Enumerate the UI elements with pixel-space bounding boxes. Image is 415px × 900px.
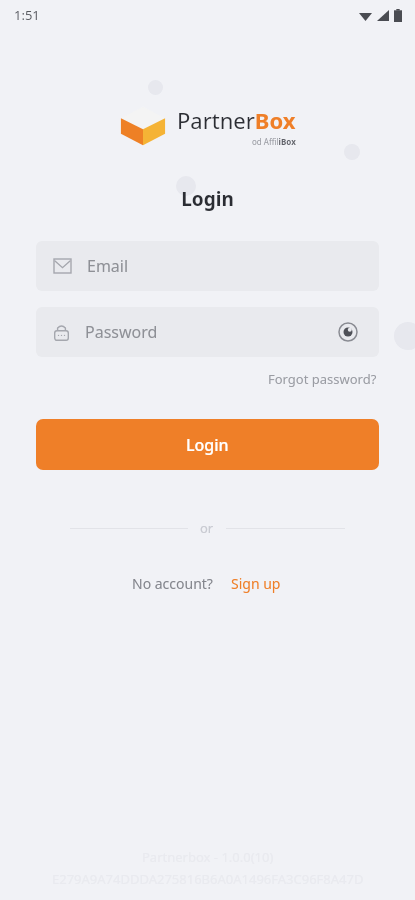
staticText: od AffiliBox (252, 136, 296, 147)
staticText: 1:51 (14, 6, 40, 24)
staticText: Forgot password? (268, 370, 377, 388)
button[interactable]: Sign up (229, 572, 283, 595)
staticText: Login (0, 186, 415, 212)
staticText: PartnerBox (177, 105, 296, 135)
button[interactable]: Show password (335, 319, 361, 345)
button[interactable]: Login (36, 419, 379, 470)
button[interactable]: Password (36, 307, 379, 357)
staticText: No account? (132, 574, 213, 593)
staticText: Email (87, 255, 129, 277)
button[interactable]: Email (36, 241, 379, 291)
staticText: Sign up (231, 574, 281, 593)
button[interactable]: Forgot password? (266, 368, 379, 390)
staticText: or (200, 519, 214, 537)
staticText: Login (186, 434, 229, 456)
staticText: Password (85, 321, 158, 343)
